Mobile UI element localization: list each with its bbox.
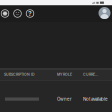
staticText: ?	[28, 9, 32, 18]
button[interactable]: Settings	[1, 9, 9, 17]
button[interactable]: Feedback	[13, 9, 21, 17]
staticText: Owner	[57, 96, 72, 102]
staticText: SUBSCRIPTION ID	[4, 72, 35, 77]
staticText: MY ROLE	[57, 72, 72, 77]
staticText: Not available	[83, 96, 108, 102]
button[interactable]: Account	[98, 7, 110, 19]
staticText: CURRE…	[83, 72, 98, 77]
button[interactable]: Owner	[0, 94, 112, 112]
button[interactable]: Help	[26, 9, 34, 17]
